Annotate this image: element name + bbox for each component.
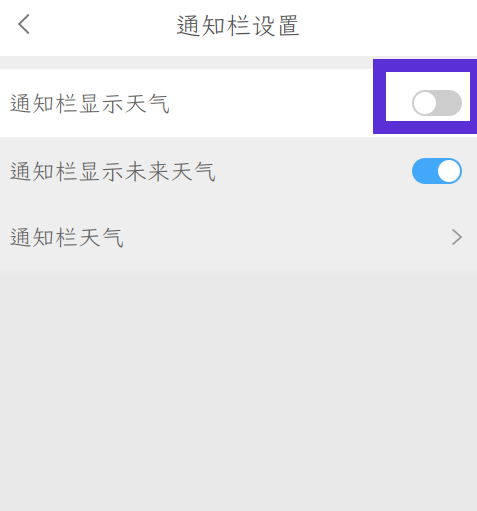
button[interactable]: 通知栏显示未来天气 [0, 137, 477, 205]
staticText: 通知栏显示天气 [9, 88, 170, 118]
staticText: 通知栏显示未来天气 [9, 156, 216, 186]
staticText: 通知栏天气 [9, 222, 124, 252]
button[interactable]: 通知栏天气 [0, 205, 477, 269]
button[interactable]: 通知栏显示天气 [0, 69, 477, 137]
staticText: 通知栏设置 [176, 9, 301, 41]
button[interactable]: Back [0, 0, 48, 48]
button[interactable]: 1 [412, 158, 462, 184]
button[interactable]: 0 [412, 90, 462, 116]
